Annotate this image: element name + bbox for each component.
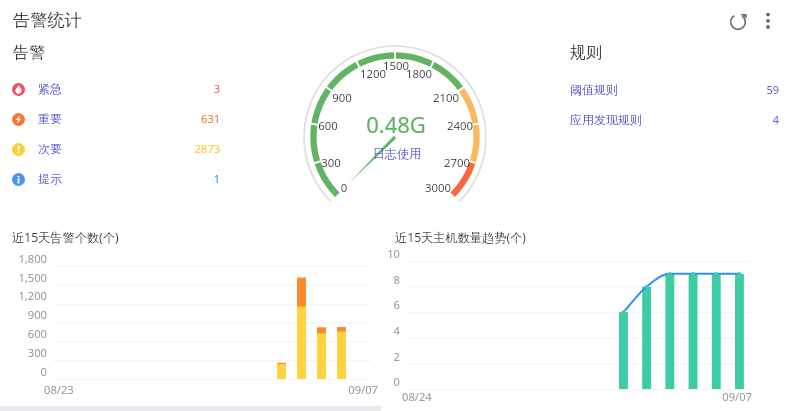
staticText: 1800 [359, 66, 479, 82]
button[interactable]: 阈值规则 [564, 76, 783, 104]
staticText: 300 [0, 345, 47, 360]
staticText: 1,500 [0, 270, 47, 285]
staticText: 0 [180, 374, 400, 389]
staticText: 0 [284, 180, 404, 196]
staticText: 阈值规则 [570, 82, 618, 97]
staticText: 0.48G [336, 109, 456, 139]
staticText: 次要 [38, 141, 62, 156]
staticText: 规则 [570, 42, 603, 62]
button[interactable]: 次要 [8, 135, 224, 163]
staticText: 应用发现规则 [570, 112, 642, 127]
staticText: 09/07 [532, 389, 752, 404]
staticText: 6 [180, 297, 400, 312]
staticText: 4 [564, 112, 779, 127]
button[interactable]: 紧急 [8, 75, 224, 103]
staticText: 09/07 [158, 382, 378, 397]
staticText: 提示 [38, 171, 62, 186]
staticText: 3000 [378, 180, 498, 196]
staticText: 59 [564, 82, 779, 97]
staticText: 2100 [386, 90, 506, 106]
staticText: 1200 [313, 66, 433, 82]
staticText: 重要 [38, 111, 62, 126]
button[interactable]: More options [758, 8, 780, 30]
button[interactable]: Refresh [726, 9, 752, 35]
staticText: 2873 [8, 141, 220, 156]
staticText: 近15天主机数量趋势(个) [395, 229, 526, 246]
staticText: 告警统计 [13, 9, 82, 31]
staticText: 日志使用 [337, 146, 457, 161]
staticText: 告警 [13, 42, 46, 62]
staticText: 近15天告警个数(个) [12, 229, 119, 246]
staticText: 08/24 [402, 389, 432, 404]
staticText: 1 [8, 171, 220, 186]
staticText: 8 [180, 272, 400, 287]
staticText: 900 [0, 307, 47, 322]
button[interactable]: 提示 [8, 165, 224, 193]
staticText: 600 [0, 326, 47, 341]
staticText: 2 [180, 349, 400, 364]
button[interactable]: 应用发现规则 [564, 106, 783, 134]
staticText: 631 [8, 111, 220, 126]
staticText: 1,800 [0, 251, 47, 266]
staticText: 900 [282, 90, 402, 106]
staticText: 2400 [400, 118, 520, 134]
staticText: 600 [268, 118, 388, 134]
staticText: 3 [8, 81, 220, 96]
staticText: 08/23 [44, 382, 74, 397]
staticText: 0 [0, 364, 47, 379]
staticText: 300 [271, 155, 391, 171]
staticText: 2700 [397, 155, 517, 171]
staticText: 1,200 [0, 288, 47, 303]
staticText: 4 [180, 323, 400, 338]
staticText: 1500 [336, 58, 456, 74]
staticText: 10 [180, 246, 400, 261]
staticText: 紧急 [38, 81, 62, 96]
button[interactable]: 重要 [8, 105, 224, 133]
